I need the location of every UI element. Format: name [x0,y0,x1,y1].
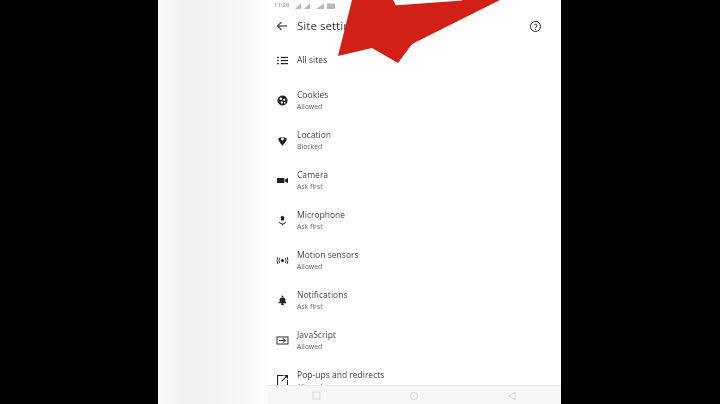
button[interactable]: Notifications [268,280,561,320]
staticText: Ask first [297,222,323,231]
staticText: Allowed [297,102,323,111]
button[interactable]: Pop-ups and redirects [268,360,561,400]
button[interactable]: Motion sensors [268,240,561,280]
staticText: Pop-ups and redirects [297,369,385,381]
staticText: Ask first [297,302,323,311]
staticText: Ask first [297,182,323,191]
staticText: Microphone [297,209,346,221]
button[interactable]: All sites [268,40,561,80]
staticText: Notifications [297,289,348,301]
staticText: Motion sensors [297,249,359,261]
staticText: Location [297,129,332,141]
staticText: Allowed [297,382,323,391]
button[interactable]: Home [365,387,463,404]
staticText: Blocked [297,142,323,151]
staticText: Cookies [297,89,329,101]
button[interactable]: Microphone [268,200,561,240]
staticText: 11:28 [274,1,290,9]
button[interactable]: Location [268,120,561,160]
staticText: All sites [297,54,328,66]
staticText: JavaScript [297,329,336,341]
button[interactable]: Camera [268,160,561,200]
staticText: Allowed [297,262,323,271]
staticText: Site settings [297,18,363,34]
button[interactable]: JavaScript [268,320,561,360]
button[interactable]: Cookies [268,80,561,120]
staticText: Camera [297,169,328,181]
button[interactable]: Back [270,14,294,38]
staticText: Allowed [297,342,323,351]
button[interactable]: Help [524,15,546,37]
